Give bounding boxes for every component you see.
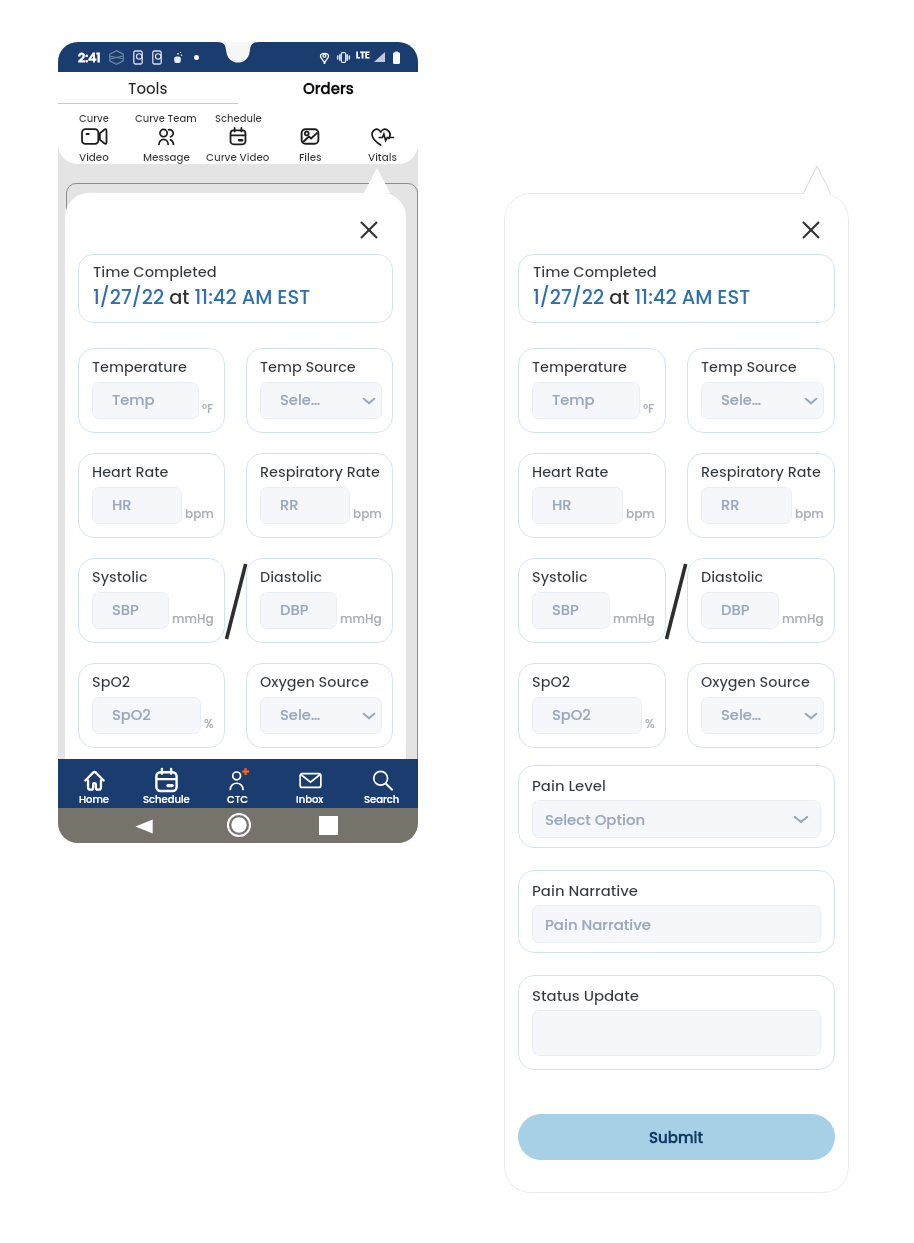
staticText: Tools bbox=[128, 78, 168, 99]
staticText: Temp bbox=[112, 390, 155, 411]
button[interactable]: Time Completed bbox=[78, 254, 393, 323]
staticText: Schedule bbox=[143, 792, 190, 806]
button[interactable]: Time Completed bbox=[518, 254, 835, 323]
staticText: 2:41 bbox=[78, 49, 101, 66]
staticText: Sele… bbox=[721, 390, 762, 411]
staticText: SBP bbox=[552, 600, 579, 621]
staticText: HR bbox=[112, 495, 132, 516]
staticText: DBP bbox=[280, 600, 309, 621]
staticText: RR bbox=[721, 495, 740, 516]
staticText: % bbox=[645, 715, 655, 732]
staticText: LTE bbox=[356, 49, 370, 62]
staticText: Curve bbox=[79, 111, 109, 122]
button[interactable]: Orders bbox=[238, 72, 418, 104]
staticText: Heart Rate bbox=[92, 462, 169, 482]
staticText: Time Completed bbox=[533, 262, 657, 283]
staticText: Orders bbox=[303, 78, 354, 99]
button[interactable]: Temp Source bbox=[246, 348, 393, 433]
button[interactable]: Home bbox=[58, 759, 130, 808]
button[interactable]: Home bbox=[227, 813, 251, 837]
staticText: 1/27/22 at 11:42 AM EST bbox=[533, 284, 751, 311]
staticText: Diastolic bbox=[701, 567, 764, 587]
staticText: Files bbox=[299, 150, 322, 164]
button[interactable]: Close bbox=[795, 214, 827, 246]
staticText: Schedule bbox=[215, 111, 262, 122]
staticText: Curve Video bbox=[206, 150, 270, 164]
button[interactable]: CTC bbox=[202, 759, 274, 808]
staticText: mmHg bbox=[613, 610, 655, 627]
staticText: Respiratory Rate bbox=[701, 462, 821, 482]
button[interactable]: Status Update bbox=[518, 975, 835, 1070]
staticText: Systolic bbox=[532, 567, 588, 587]
staticText: 1/27/22 at 11:42 AM EST bbox=[93, 284, 311, 311]
button[interactable]: Pain Narrative bbox=[518, 870, 835, 953]
button[interactable]: Respiratory Rate bbox=[246, 453, 393, 538]
button[interactable]: Curve Team bbox=[130, 104, 202, 164]
staticText: Oxygen Source bbox=[701, 672, 810, 692]
staticText: Curve Team bbox=[135, 111, 197, 122]
button[interactable]: Vitals bbox=[346, 104, 418, 164]
staticText: mmHg bbox=[172, 610, 214, 627]
button[interactable]: Diastolic bbox=[687, 558, 835, 643]
staticText: Select Option bbox=[545, 809, 646, 830]
staticText: Oxygen Source bbox=[260, 672, 369, 692]
staticText: bpm bbox=[353, 505, 382, 522]
staticText: RR bbox=[280, 495, 299, 516]
button[interactable]: Tools bbox=[58, 72, 238, 104]
staticText: Temp Source bbox=[701, 357, 797, 377]
button[interactable]: Search bbox=[346, 759, 418, 808]
button[interactable]: Submit bbox=[518, 1114, 835, 1160]
staticText: Heart Rate bbox=[532, 462, 609, 482]
staticText: % bbox=[204, 715, 214, 732]
button[interactable]: Inbox bbox=[274, 759, 346, 808]
staticText: bpm bbox=[185, 505, 214, 522]
staticText: Temp bbox=[552, 390, 595, 411]
staticText: Pain Narrative bbox=[545, 914, 652, 935]
staticText: Sele… bbox=[280, 390, 321, 411]
staticText: Sele… bbox=[280, 705, 321, 726]
button[interactable]: Systolic bbox=[518, 558, 666, 643]
staticText: Search bbox=[364, 792, 400, 806]
staticText: bpm bbox=[626, 505, 655, 522]
button[interactable]: Files bbox=[274, 104, 346, 164]
button[interactable]: Curve bbox=[58, 104, 130, 164]
button[interactable]: Heart Rate bbox=[518, 453, 666, 538]
staticText: Pain Narrative bbox=[532, 880, 639, 901]
button[interactable]: SpO2 bbox=[78, 663, 225, 748]
staticText: Message bbox=[143, 150, 190, 164]
staticText: Respiratory Rate bbox=[260, 462, 380, 482]
staticText: SpO2 bbox=[92, 672, 131, 692]
button[interactable]: Schedule bbox=[202, 104, 274, 164]
button[interactable]: Diastolic bbox=[246, 558, 393, 643]
staticText: SBP bbox=[112, 600, 139, 621]
staticText: Time Completed bbox=[93, 262, 217, 283]
staticText: °F bbox=[643, 400, 655, 417]
staticText: Temp Source bbox=[260, 357, 356, 377]
staticText: SpO2 bbox=[532, 672, 571, 692]
button[interactable]: Temp Source bbox=[687, 348, 835, 433]
staticText: Systolic bbox=[92, 567, 148, 587]
button[interactable]: Temperature bbox=[78, 348, 225, 433]
staticText: Vitals bbox=[368, 150, 397, 164]
button[interactable]: Close bbox=[353, 214, 385, 246]
button[interactable]: Schedule bbox=[130, 759, 202, 808]
button[interactable]: Temperature bbox=[518, 348, 666, 433]
staticText: Diastolic bbox=[260, 567, 323, 587]
staticText: Submit bbox=[649, 1127, 704, 1148]
button[interactable]: Pain Level bbox=[518, 765, 835, 848]
staticText: Video bbox=[79, 150, 109, 164]
button[interactable]: Respiratory Rate bbox=[687, 453, 835, 538]
staticText: Temperature bbox=[92, 357, 187, 377]
button[interactable]: Heart Rate bbox=[78, 453, 225, 538]
button[interactable]: Systolic bbox=[78, 558, 225, 643]
staticText: DBP bbox=[721, 600, 750, 621]
staticText: Pain Level bbox=[532, 775, 606, 796]
button[interactable]: Oxygen Source bbox=[687, 663, 835, 748]
staticText: bpm bbox=[795, 505, 824, 522]
staticText: Sele… bbox=[721, 705, 762, 726]
button[interactable]: Oxygen Source bbox=[246, 663, 393, 748]
staticText: CTC bbox=[227, 792, 249, 806]
button[interactable]: Back bbox=[132, 815, 155, 838]
button[interactable]: SpO2 bbox=[518, 663, 666, 748]
